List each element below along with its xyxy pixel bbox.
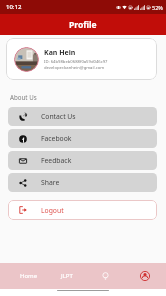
button[interactable]: Home [10,272,48,280]
button[interactable]: Feedback [8,151,157,170]
staticText: About Us [10,93,37,101]
staticText: Feedback [41,156,72,165]
button[interactable]: Share [8,173,157,192]
button[interactable]: Kan Hein [6,38,157,80]
staticText: Share [41,178,60,187]
staticText: 10:12 [6,3,22,11]
staticText: Logout [41,206,64,215]
staticText: Home [20,272,38,280]
staticText: ID: 64b98beb0688f0a59d046c97 [44,59,108,65]
staticText: developer.kanhein@gmail.com [44,65,105,71]
button[interactable]: Profile [125,271,164,281]
staticText: 52% [152,4,163,11]
button[interactable]: Facebook [8,129,157,148]
button[interactable]: Contact Us [8,107,157,126]
staticText: Facebook [41,134,72,143]
button[interactable]: JLPT [48,272,86,280]
staticText: JLPT [61,272,73,280]
staticText: Contact Us [41,112,76,121]
button[interactable]: Tips [86,272,125,281]
button[interactable]: Logout [8,200,157,220]
staticText: Kan Hein [44,48,76,58]
staticText: Profile [69,19,97,31]
